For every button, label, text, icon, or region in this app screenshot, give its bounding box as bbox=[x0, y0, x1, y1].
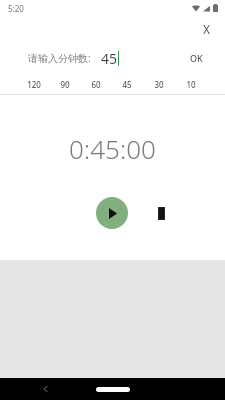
staticText: 10 bbox=[186, 79, 196, 90]
staticText: X bbox=[203, 21, 211, 37]
button[interactable]: 10 bbox=[175, 74, 207, 94]
button[interactable]: 90 bbox=[49, 74, 80, 94]
staticText: 0:45:00 bbox=[69, 131, 156, 161]
button[interactable]: Stop bbox=[153, 202, 169, 224]
button[interactable]: Home bbox=[96, 387, 130, 392]
button[interactable]: 45 bbox=[101, 46, 141, 70]
button[interactable]: Close bbox=[194, 16, 220, 42]
button[interactable]: OK bbox=[181, 46, 211, 70]
staticText: 90 bbox=[60, 79, 70, 90]
button[interactable]: Start bbox=[96, 197, 128, 229]
button[interactable]: 60 bbox=[80, 74, 111, 94]
button[interactable]: Back bbox=[38, 381, 54, 397]
staticText: 30 bbox=[154, 79, 164, 90]
staticText: 60 bbox=[91, 79, 101, 90]
staticText: 120 bbox=[27, 79, 41, 90]
staticText: OK bbox=[190, 52, 203, 64]
staticText: 5:20 bbox=[8, 3, 24, 14]
staticText: 请输入分钟数: bbox=[28, 51, 91, 65]
button[interactable]: 120 bbox=[18, 74, 49, 94]
button[interactable]: 30 bbox=[143, 74, 175, 94]
staticText: 45 bbox=[122, 79, 132, 90]
button[interactable]: 45 bbox=[111, 74, 143, 94]
staticText: 45 bbox=[101, 49, 118, 68]
